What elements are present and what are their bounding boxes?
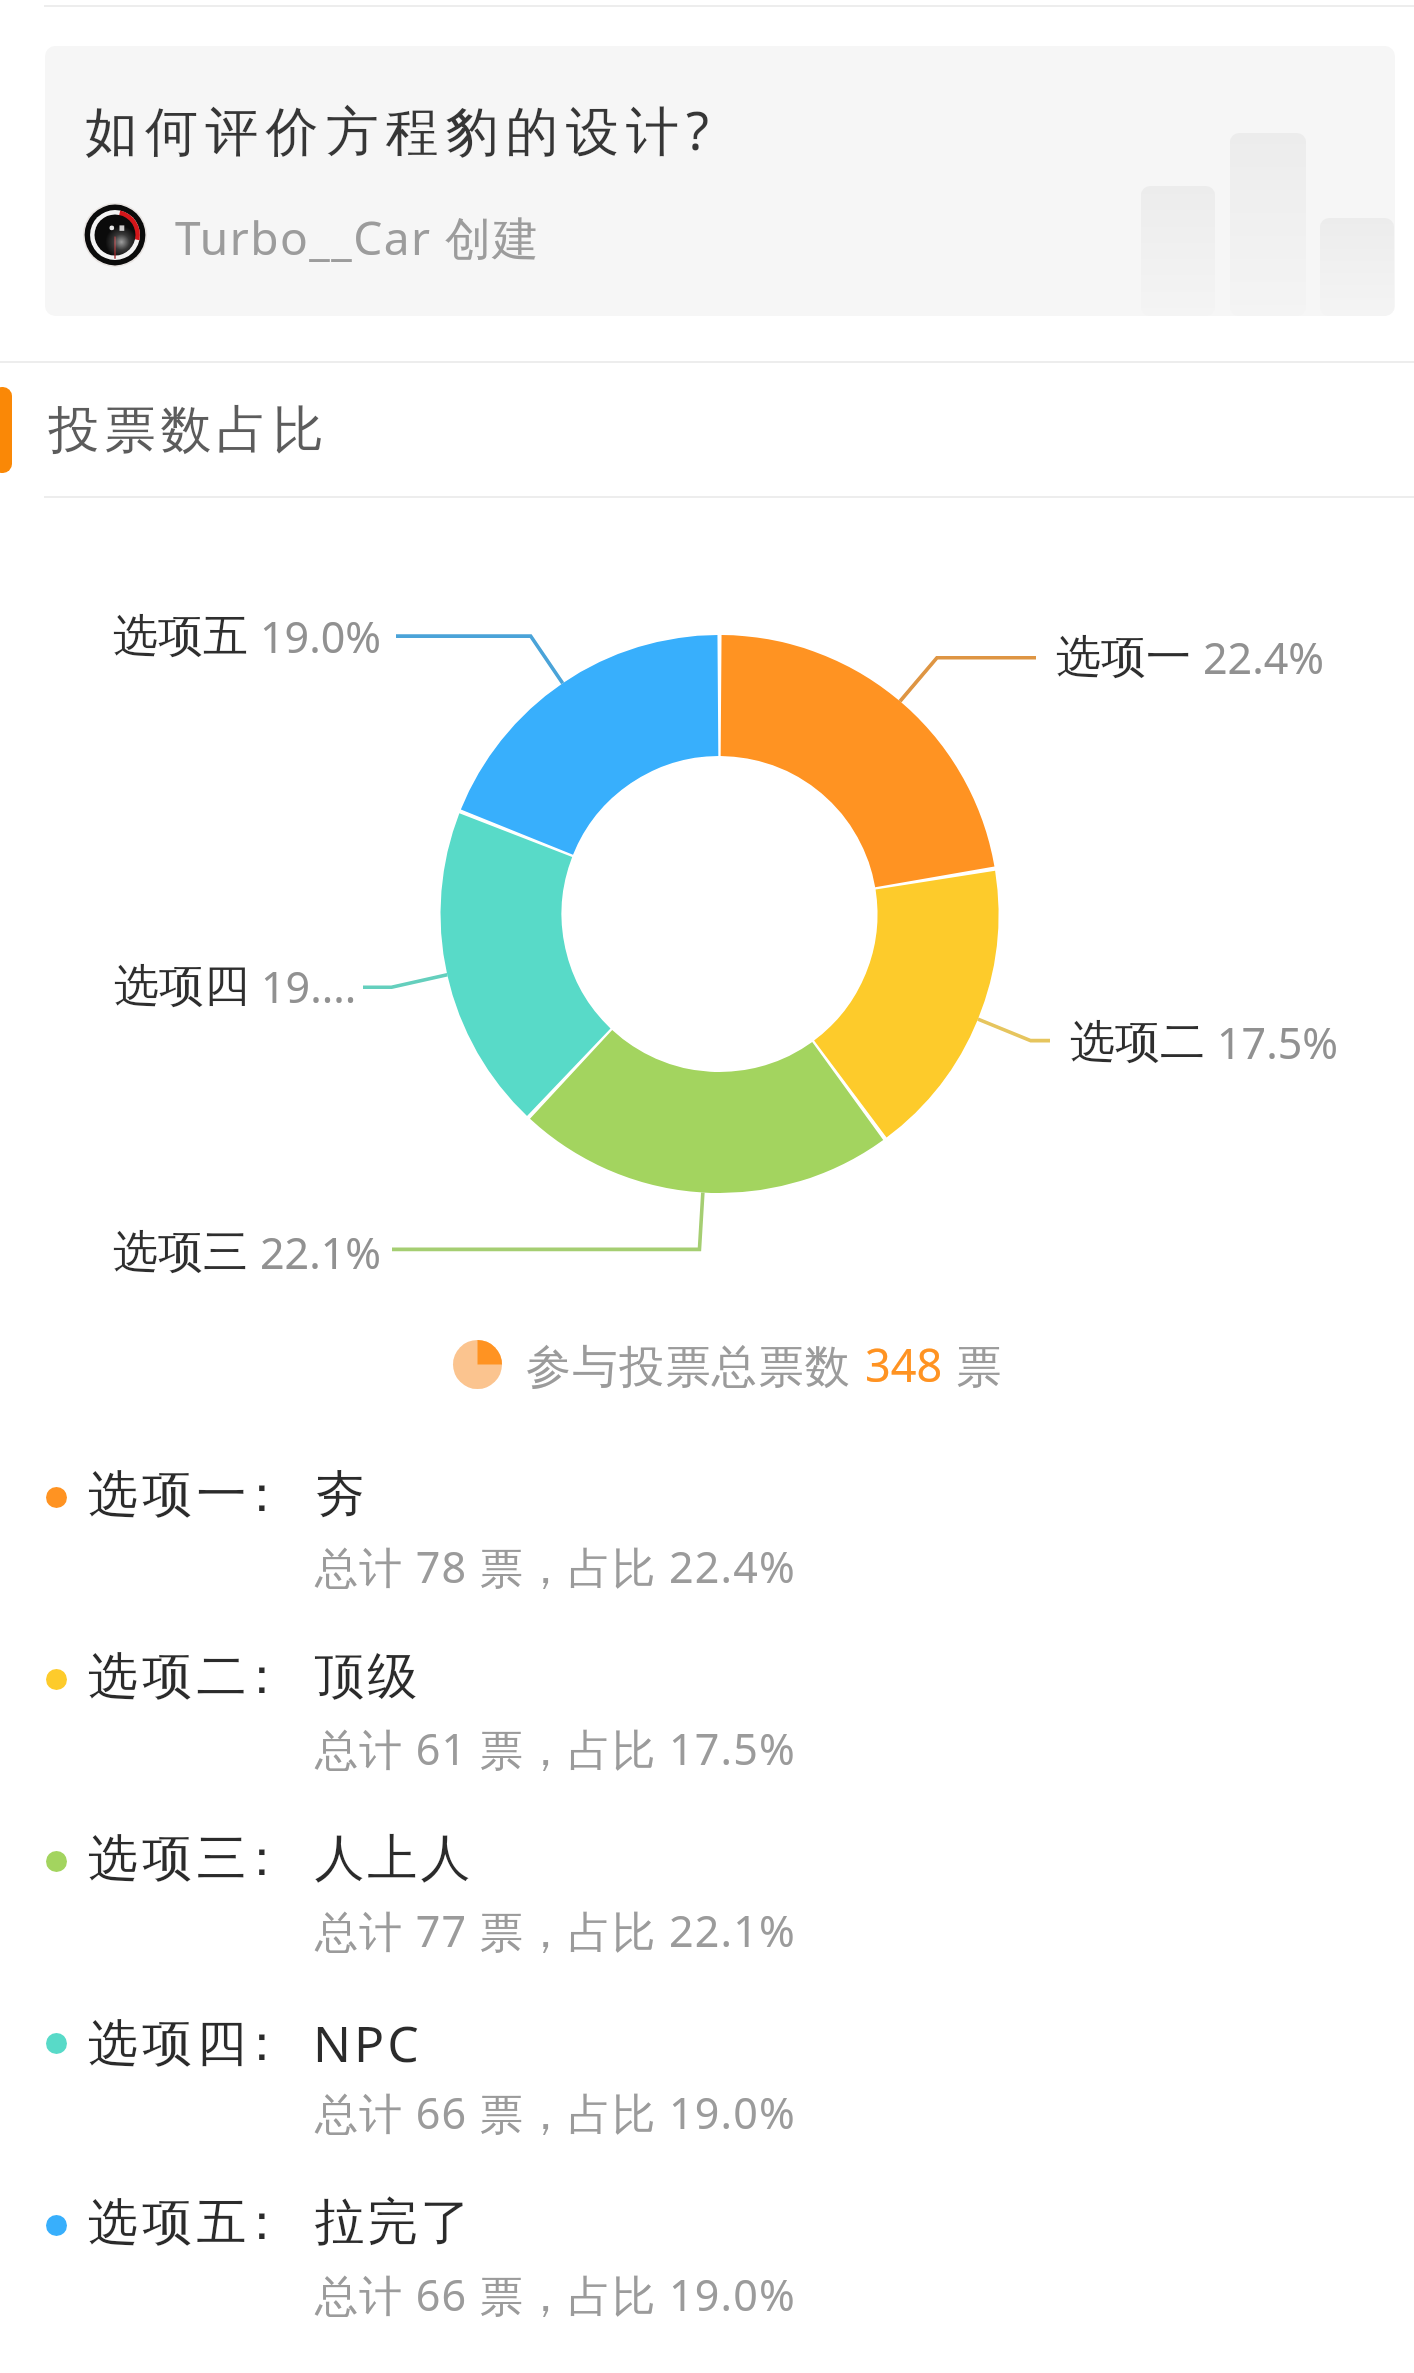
staticText: ： <box>237 1645 287 1708</box>
button[interactable]: 选项五 <box>113 604 382 668</box>
button[interactable]: 如何评价方程豹的设计? <box>45 46 1395 316</box>
button[interactable]: Poll statistics <box>21 1329 1414 1399</box>
button[interactable]: 选项二 <box>0 1622 1414 1782</box>
staticText: 拉完了 <box>313 2191 472 2254</box>
other: Poll statistics <box>453 1340 502 1389</box>
staticText: 348 <box>865 1334 943 1395</box>
staticText: Turbo__Car 创建 <box>175 206 541 269</box>
staticText: 选项五 <box>88 2191 251 2254</box>
button[interactable]: 投票数占比 <box>46 378 326 482</box>
staticText: 选项四 <box>114 958 249 1015</box>
button[interactable]: 选项二 <box>1070 1010 1339 1074</box>
staticText: 票 <box>943 1334 1003 1395</box>
staticText: 总计 61 票，占比 17.5% <box>315 1719 796 1778</box>
staticText: 总计 66 票，占比 19.0% <box>315 2265 796 2324</box>
staticText: 参与投票总票数 <box>526 1334 865 1395</box>
button[interactable]: 选项一 <box>1056 625 1325 689</box>
staticText: 顶级 <box>313 1645 419 1708</box>
staticText: 投票数占比 <box>46 398 326 462</box>
staticText: ： <box>237 1463 287 1526</box>
staticText: ： <box>237 2012 287 2075</box>
staticText: 夯 <box>313 1463 366 1526</box>
staticText: 选项三 <box>113 1224 248 1281</box>
button[interactable]: 选项三 <box>113 1220 382 1284</box>
staticText: 选项一 <box>1056 629 1191 686</box>
staticText: 19.0% <box>260 607 382 666</box>
staticText: ： <box>237 1827 287 1890</box>
staticText: 19.... <box>261 957 357 1016</box>
staticText: 人上人 <box>313 1827 472 1890</box>
staticText: 总计 66 票，占比 19.0% <box>315 2083 796 2142</box>
staticText: 选项五 <box>113 608 248 665</box>
staticText: 17.5% <box>1217 1013 1339 1072</box>
staticText: 选项一 <box>88 1463 251 1526</box>
staticText: 选项四 <box>88 2012 251 2075</box>
button[interactable]: 选项四 <box>0 1986 1414 2146</box>
staticText: 总计 77 票，占比 22.1% <box>315 1901 796 1960</box>
button[interactable]: 选项三 <box>0 1804 1414 1964</box>
other: User avatar <box>83 203 147 267</box>
staticText: 22.1% <box>260 1223 382 1282</box>
button[interactable]: 选项四 <box>114 954 357 1018</box>
button[interactable]: 选项五 <box>0 2168 1414 2328</box>
staticText: NPC <box>313 2009 422 2077</box>
button[interactable]: 选项一 <box>0 1440 1414 1600</box>
staticText: 选项三 <box>88 1827 251 1890</box>
staticText: 如何评价方程豹的设计? <box>85 93 717 165</box>
staticText: 选项二 <box>1070 1014 1205 1071</box>
staticText: 22.4% <box>1203 628 1325 687</box>
staticText: ： <box>237 2191 287 2254</box>
staticText: 选项二 <box>88 1645 251 1708</box>
staticText: 总计 78 票，占比 22.4% <box>315 1537 796 1596</box>
